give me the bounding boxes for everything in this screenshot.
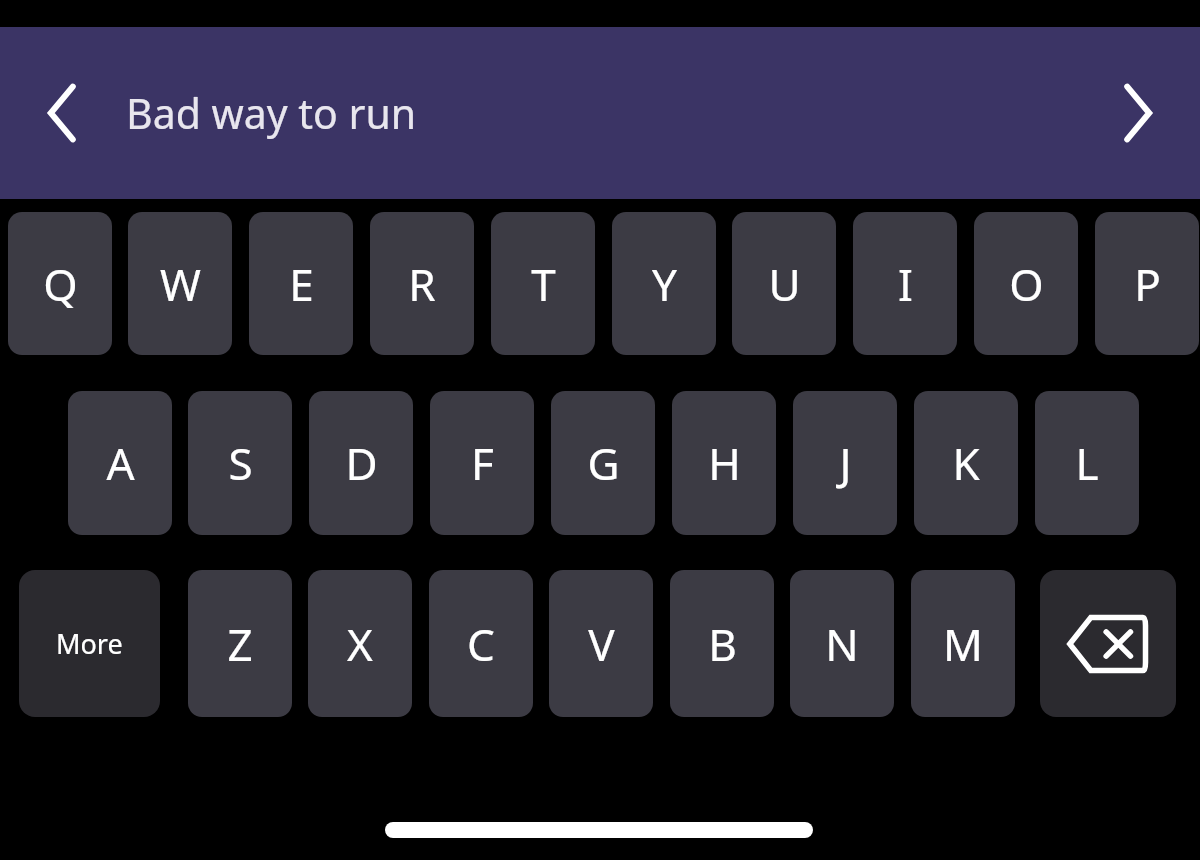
staticText: R xyxy=(408,254,436,314)
button[interactable]: R xyxy=(370,212,474,355)
staticText: S xyxy=(228,433,253,493)
button[interactable]: N xyxy=(790,570,894,717)
staticText: L xyxy=(1075,433,1099,493)
button[interactable]: Forward xyxy=(1092,60,1180,166)
staticText: N xyxy=(825,614,859,674)
button[interactable]: H xyxy=(672,391,776,535)
staticText: X xyxy=(347,614,373,674)
button[interactable]: More xyxy=(19,570,160,717)
button[interactable]: I xyxy=(853,212,957,355)
staticText: T xyxy=(531,254,556,314)
button[interactable]: C xyxy=(429,570,533,717)
staticText: K xyxy=(952,433,980,493)
staticText: I xyxy=(898,254,913,314)
button[interactable]: S xyxy=(188,391,292,535)
staticText: O xyxy=(1009,254,1044,314)
button[interactable]: Bad way to run xyxy=(126,57,626,169)
staticText: E xyxy=(289,254,314,314)
button[interactable]: F xyxy=(430,391,534,535)
staticText: V xyxy=(588,614,615,674)
button[interactable]: Z xyxy=(188,570,292,717)
button[interactable]: Backspace xyxy=(1040,570,1176,717)
staticText: G xyxy=(587,433,620,493)
button[interactable]: K xyxy=(914,391,1018,535)
staticText: Bad way to run xyxy=(126,85,417,141)
staticText: More xyxy=(56,625,123,662)
button[interactable]: Back xyxy=(20,60,108,166)
button[interactable]: X xyxy=(308,570,412,717)
button[interactable]: L xyxy=(1035,391,1139,535)
button[interactable]: W xyxy=(128,212,232,355)
button[interactable]: V xyxy=(549,570,653,717)
staticText: D xyxy=(345,433,378,493)
staticText: Y xyxy=(652,254,677,314)
staticText: Z xyxy=(227,614,253,674)
button[interactable]: G xyxy=(551,391,655,535)
button[interactable]: O xyxy=(974,212,1078,355)
button[interactable]: D xyxy=(309,391,413,535)
staticText: J xyxy=(839,433,852,493)
staticText: M xyxy=(943,614,983,674)
button[interactable]: A xyxy=(68,391,172,535)
staticText: C xyxy=(467,614,495,674)
button[interactable]: P xyxy=(1095,212,1199,355)
button[interactable]: B xyxy=(670,570,774,717)
button[interactable]: T xyxy=(491,212,595,355)
button[interactable]: U xyxy=(732,212,836,355)
button[interactable]: Q xyxy=(8,212,112,355)
staticText: U xyxy=(768,254,801,314)
staticText: A xyxy=(106,433,135,493)
button[interactable]: E xyxy=(249,212,353,355)
button[interactable]: Y xyxy=(612,212,716,355)
staticText: F xyxy=(471,433,494,493)
button[interactable]: M xyxy=(911,570,1015,717)
staticText: B xyxy=(708,614,737,674)
staticText: P xyxy=(1134,254,1161,314)
staticText: W xyxy=(160,254,201,314)
staticText: H xyxy=(708,433,741,493)
staticText: Q xyxy=(43,254,78,314)
button[interactable]: J xyxy=(793,391,897,535)
